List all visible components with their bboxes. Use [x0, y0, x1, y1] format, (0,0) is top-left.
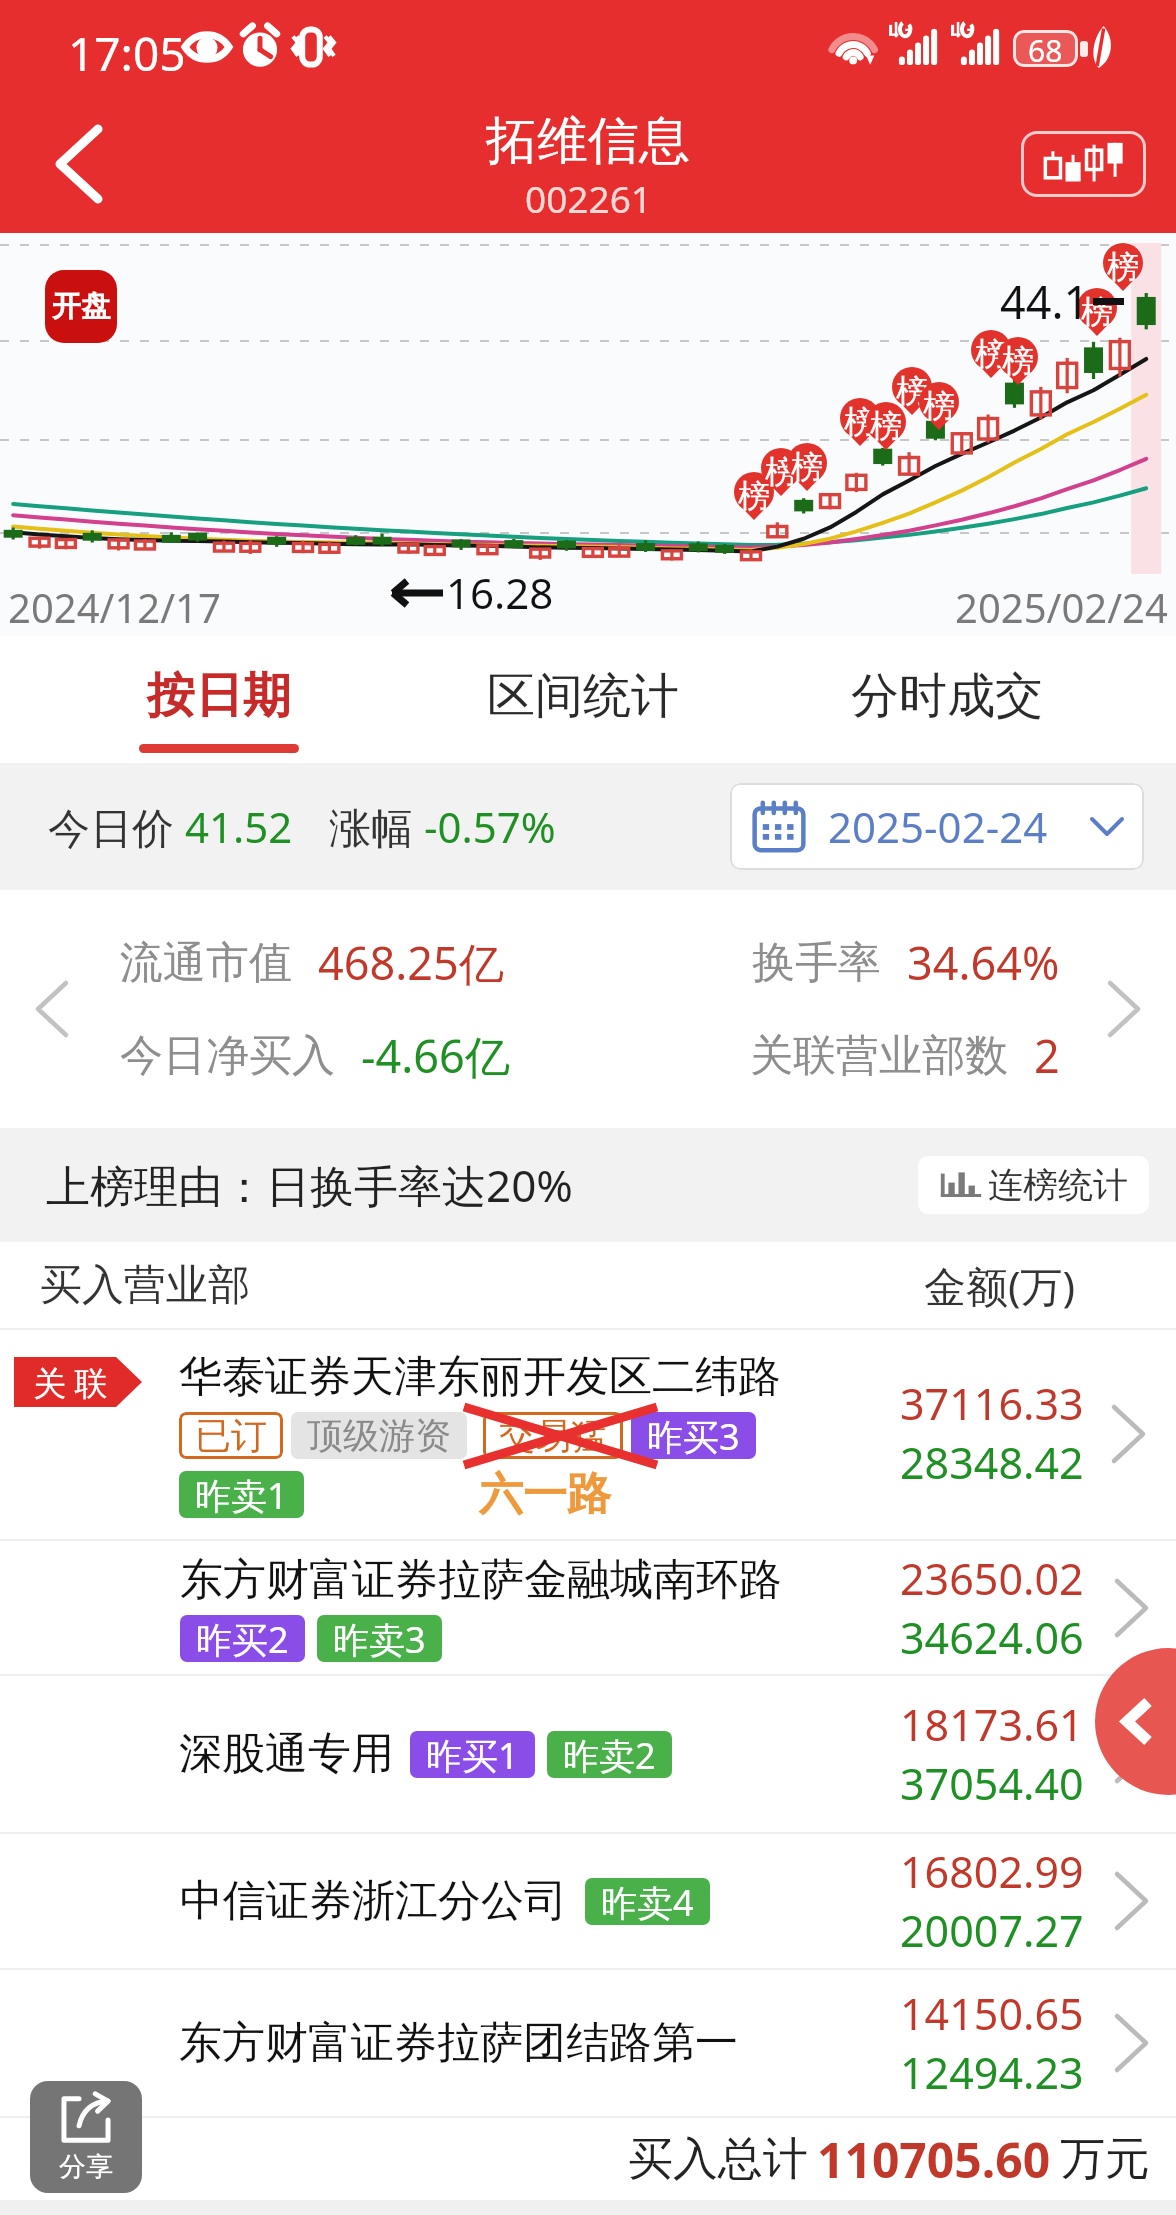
staticText: 16802.99: [900, 1842, 1084, 1901]
staticText: 东方财富证券拉萨金融城南环路: [180, 1553, 782, 1607]
staticText: 37116.33: [900, 1374, 1084, 1433]
button[interactable]: 区间统计: [401, 636, 765, 763]
staticText: 今日净买入: [120, 1029, 335, 1083]
button[interactable]: 中信证券浙江分公司: [0, 1834, 1176, 1968]
button[interactable]: Back: [24, 109, 134, 219]
button[interactable]: 2025-02-24: [730, 783, 1144, 870]
staticText: 交易猛: [499, 1413, 607, 1458]
staticText: 连榜统计: [988, 1163, 1128, 1207]
staticText: 18173.61: [900, 1695, 1084, 1754]
staticText: 昨卖1: [195, 1471, 288, 1518]
staticText: 榜: [923, 386, 955, 426]
staticText: 已订: [195, 1413, 267, 1458]
staticText: 昨买2: [196, 1615, 289, 1662]
staticText: 拓维信息: [486, 109, 690, 173]
staticText: 28348.42: [900, 1433, 1084, 1492]
staticText: 榜: [1081, 292, 1113, 332]
staticText: 68: [1028, 30, 1063, 67]
staticText: 14150.65: [900, 1984, 1084, 2043]
staticText: 开盘: [52, 288, 110, 325]
staticText: 榜: [844, 402, 876, 442]
button[interactable]: 分时成交: [765, 636, 1129, 763]
staticText: 2025-02-24: [828, 798, 1048, 855]
staticText: 关联营业部数: [750, 1029, 1008, 1083]
button[interactable]: 分享: [30, 2081, 142, 2193]
staticText: 分时成交: [851, 666, 1043, 726]
staticText: 换手率: [752, 936, 881, 990]
staticText: 东方财富证券拉萨团结路第一: [179, 2016, 738, 2070]
button[interactable]: 连榜统计: [918, 1156, 1149, 1214]
staticText: 23650.02: [900, 1549, 1084, 1608]
staticText: 榜: [975, 334, 1007, 374]
staticText: -0.57%: [424, 798, 556, 855]
staticText: 12494.23: [900, 2043, 1084, 2102]
staticText: 昨买1: [426, 1731, 519, 1778]
staticText: 昨卖4: [601, 1878, 694, 1925]
staticText: 区间统计: [487, 666, 679, 726]
staticText: 110705.60: [817, 2127, 1051, 2192]
staticText: 分享: [59, 2150, 113, 2184]
button[interactable]: 下一页: [1090, 963, 1158, 1055]
staticText: 买入营业部: [40, 1259, 250, 1312]
button[interactable]: 上一页: [18, 963, 86, 1055]
staticText: 34624.06: [900, 1608, 1084, 1667]
staticText: 昨买3: [647, 1412, 740, 1459]
staticText: 468.25亿: [318, 932, 504, 993]
staticText: 华泰证券天津东丽开发区二纬路: [179, 1350, 781, 1404]
staticText: 流通市值: [120, 936, 292, 990]
staticText: 榜: [791, 447, 823, 487]
staticText: 榜: [738, 476, 770, 516]
staticText: 六一路: [479, 1467, 611, 1522]
staticText: 002261: [525, 173, 652, 223]
staticText: -4.66亿: [361, 1025, 510, 1086]
staticText: 榜: [1002, 341, 1034, 381]
staticText: 34.64%: [907, 932, 1060, 993]
staticText: 买入总计: [628, 2131, 808, 2188]
button[interactable]: 东方财富证券拉萨团结路第一: [0, 1970, 1176, 2116]
staticText: 涨幅: [329, 798, 424, 855]
staticText: 20007.27: [900, 1901, 1084, 1960]
button[interactable]: 深股通专用: [0, 1676, 1176, 1832]
staticText: 关 联: [33, 1360, 108, 1405]
staticText: 中信证券浙江分公司: [180, 1874, 567, 1928]
staticText: 榜: [870, 406, 902, 446]
staticText: 2025/02/24: [955, 580, 1168, 634]
button[interactable]: 东方财富证券拉萨金融城南环路: [0, 1541, 1176, 1674]
staticText: 万元: [1060, 2131, 1150, 2188]
staticText: 昨卖2: [563, 1731, 656, 1778]
staticText: 2: [1034, 1025, 1060, 1086]
staticText: 深股通专用: [179, 1727, 394, 1781]
staticText: 41.52: [185, 798, 293, 855]
staticText: 顶级游资: [307, 1413, 451, 1458]
staticText: 榜: [896, 371, 928, 411]
button[interactable]: K线图: [1021, 131, 1146, 197]
staticText: 37054.40: [900, 1754, 1084, 1813]
staticText: 16.28: [446, 564, 554, 621]
staticText: 榜: [765, 452, 797, 492]
staticText: 金额(万): [924, 1257, 1076, 1314]
button[interactable]: 关 联: [0, 1330, 1176, 1539]
staticText: 上榜理由：日换手率达20%: [46, 1155, 573, 1215]
staticText: 44.1: [1000, 271, 1090, 332]
staticText: 今日价: [48, 798, 185, 855]
staticText: 按日期: [147, 666, 291, 726]
staticText: 17:05: [68, 22, 186, 85]
button[interactable]: 收起: [1095, 1648, 1176, 1795]
button[interactable]: 按日期: [37, 636, 401, 763]
staticText: 昨卖3: [333, 1615, 426, 1662]
staticText: 榜: [1107, 247, 1139, 287]
staticText: 2024/12/17: [8, 580, 221, 634]
